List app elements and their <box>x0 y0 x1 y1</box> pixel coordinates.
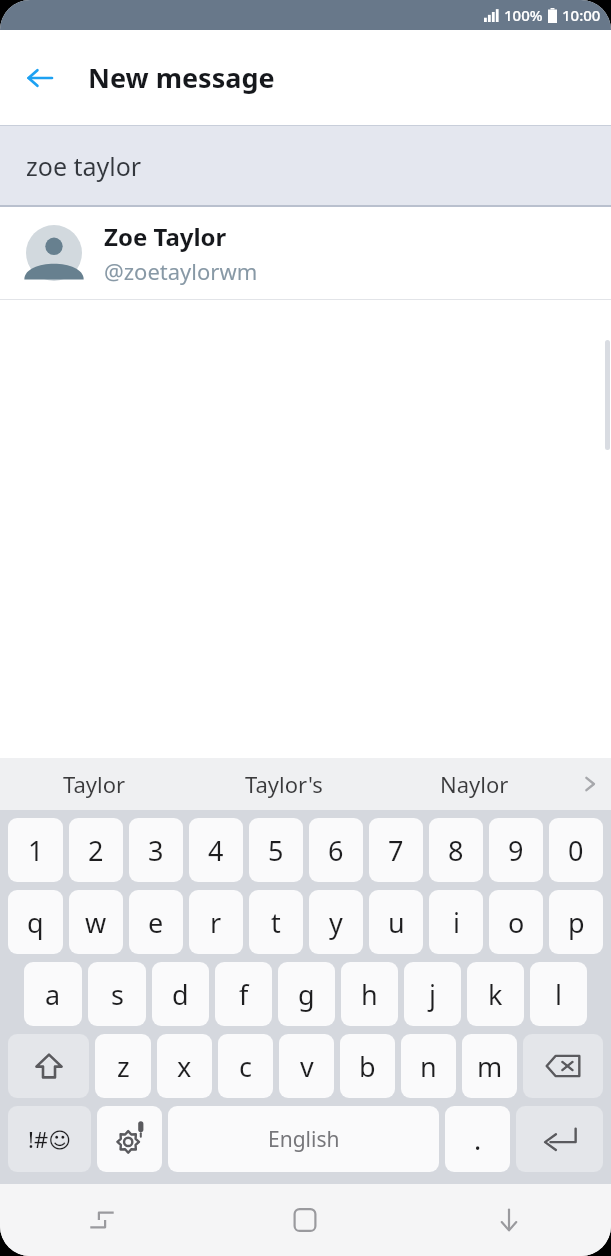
staticText: 4 <box>208 832 224 869</box>
button[interactable]: c <box>218 1034 273 1098</box>
button[interactable]: z <box>95 1034 151 1098</box>
staticText: c <box>239 1048 252 1085</box>
staticText: f <box>239 976 249 1013</box>
button[interactable]: g <box>278 962 335 1026</box>
button[interactable]: x <box>157 1034 212 1098</box>
button[interactable]: . <box>445 1106 510 1172</box>
staticText: a <box>45 976 61 1013</box>
staticText: Zoe Taylor <box>104 220 227 253</box>
button[interactable]: More suggestions <box>569 758 611 810</box>
button[interactable]: j <box>404 962 461 1026</box>
staticText: d <box>172 976 189 1013</box>
button[interactable]: 6 <box>309 818 363 882</box>
staticText: 2 <box>88 832 104 869</box>
button[interactable]: m <box>462 1034 517 1098</box>
staticText: p <box>568 904 585 941</box>
staticText: e <box>148 904 164 941</box>
staticText: h <box>361 976 378 1013</box>
button[interactable]: d <box>152 962 209 1026</box>
staticText: 9 <box>508 832 524 869</box>
staticText: 3 <box>148 832 164 869</box>
staticText: !#☺ <box>28 1124 72 1154</box>
staticText: 8 <box>448 832 464 869</box>
staticText: zoe taylor <box>26 149 142 183</box>
button[interactable]: v <box>279 1034 334 1098</box>
staticText: 6 <box>328 832 344 869</box>
button[interactable]: Taylor's <box>189 758 379 810</box>
staticText: New message <box>88 59 275 96</box>
button[interactable]: Backspace <box>523 1034 603 1098</box>
button[interactable]: t <box>249 890 303 954</box>
staticText: q <box>27 904 44 941</box>
staticText: 10:00 <box>562 5 601 25</box>
button[interactable]: Home <box>203 1184 407 1256</box>
button[interactable]: Hide keyboard <box>407 1184 611 1256</box>
staticText: v <box>300 1048 314 1085</box>
staticText: u <box>388 904 405 941</box>
button[interactable]: 5 <box>249 818 303 882</box>
staticText: 100% <box>504 5 543 25</box>
button[interactable]: Zoe Taylor <box>0 207 611 299</box>
button[interactable]: a <box>24 962 82 1026</box>
button[interactable]: s <box>88 962 146 1026</box>
button[interactable]: zoe taylor <box>0 125 611 207</box>
button[interactable]: 1 <box>8 818 63 882</box>
staticText: . <box>474 1121 482 1158</box>
staticText: English <box>268 1125 340 1154</box>
staticText: n <box>420 1048 437 1085</box>
staticText: 7 <box>388 832 404 869</box>
button[interactable]: e <box>129 890 183 954</box>
staticText: s <box>111 976 124 1013</box>
staticText: z <box>117 1048 130 1085</box>
button[interactable]: Recents <box>0 1184 203 1256</box>
button[interactable]: Back <box>12 50 68 106</box>
staticText: Naylor <box>440 769 509 799</box>
button[interactable]: h <box>341 962 398 1026</box>
button[interactable]: English <box>168 1106 439 1172</box>
button[interactable]: 9 <box>489 818 543 882</box>
button[interactable]: n <box>401 1034 456 1098</box>
staticText: j <box>429 976 436 1013</box>
staticText: m <box>477 1048 503 1085</box>
button[interactable]: 8 <box>429 818 483 882</box>
staticText: l <box>555 976 562 1013</box>
staticText: t <box>271 904 281 941</box>
staticText: 0 <box>568 832 584 869</box>
button[interactable]: i <box>429 890 483 954</box>
staticText: 5 <box>268 832 284 869</box>
staticText: r <box>210 904 222 941</box>
button[interactable]: Naylor <box>379 758 569 810</box>
staticText: Taylor's <box>245 769 323 799</box>
staticText: @zoetaylorwm <box>104 256 258 286</box>
button[interactable]: o <box>489 890 543 954</box>
button[interactable]: Taylor <box>0 758 189 810</box>
button[interactable]: r <box>189 890 243 954</box>
staticText: w <box>85 904 107 941</box>
button[interactable]: Enter <box>516 1106 603 1172</box>
button[interactable]: u <box>369 890 423 954</box>
staticText: g <box>298 976 315 1013</box>
button[interactable]: Symbols and emoji <box>8 1106 91 1172</box>
button[interactable]: Shift <box>8 1034 89 1098</box>
button[interactable]: f <box>215 962 272 1026</box>
button[interactable]: k <box>467 962 524 1026</box>
staticText: b <box>359 1048 376 1085</box>
button[interactable]: 2 <box>69 818 123 882</box>
button[interactable]: w <box>69 890 123 954</box>
staticText: i <box>453 904 460 941</box>
button[interactable]: 0 <box>549 818 603 882</box>
button[interactable]: l <box>530 962 587 1026</box>
staticText: 1 <box>28 832 44 869</box>
staticText: Taylor <box>63 769 126 799</box>
button[interactable]: 3 <box>129 818 183 882</box>
button[interactable]: Keyboard settings <box>97 1106 162 1172</box>
button[interactable]: p <box>549 890 603 954</box>
button[interactable]: 4 <box>189 818 243 882</box>
staticText: k <box>488 976 503 1013</box>
button[interactable]: b <box>340 1034 395 1098</box>
staticText: o <box>508 904 525 941</box>
button[interactable]: y <box>309 890 363 954</box>
button[interactable]: 7 <box>369 818 423 882</box>
staticText: y <box>329 904 343 941</box>
button[interactable]: q <box>8 890 63 954</box>
